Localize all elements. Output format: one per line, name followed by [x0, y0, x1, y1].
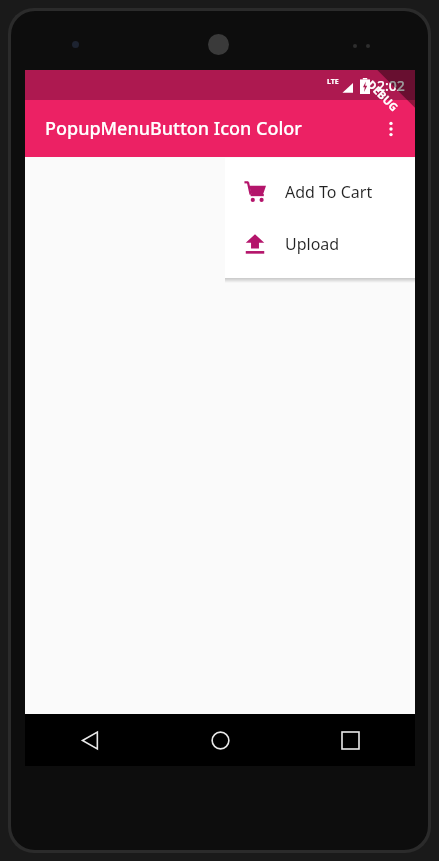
staticText: LTE	[327, 77, 339, 87]
staticText: 2:02	[377, 76, 405, 95]
button[interactable]: Upload	[225, 218, 415, 270]
button[interactable]: Add To Cart	[225, 166, 415, 218]
staticText: DEBUG	[364, 77, 402, 114]
button[interactable]: More options	[367, 100, 415, 157]
staticText: Upload	[285, 233, 340, 255]
button[interactable]: Back	[25, 714, 155, 766]
staticText: PopupMenuButton Icon Color	[45, 116, 302, 141]
button[interactable]: Home	[155, 714, 285, 766]
staticText: Add To Cart	[285, 181, 373, 203]
button[interactable]: Recent apps	[285, 714, 415, 766]
